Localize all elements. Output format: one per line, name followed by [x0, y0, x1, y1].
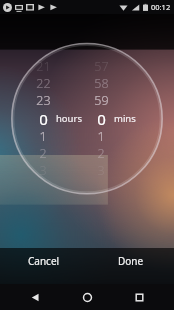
staticText: 3 — [97, 162, 105, 179]
staticText: 57 — [94, 58, 109, 75]
button[interactable]: Recent apps — [122, 284, 156, 310]
button[interactable]: Home — [70, 284, 104, 310]
staticText: 23 — [36, 92, 51, 109]
staticText: 2 — [97, 145, 105, 162]
button[interactable]: Cancel — [0, 244, 87, 278]
button[interactable]: Back — [18, 284, 52, 310]
button[interactable]: Done — [87, 244, 174, 278]
staticText: mins — [114, 112, 136, 125]
staticText: 1 — [39, 128, 47, 145]
staticText: 0 — [39, 109, 48, 128]
staticText: 21 — [36, 58, 51, 75]
staticText: 0 — [97, 109, 106, 128]
button[interactable]: 57 — [91, 58, 111, 179]
staticText: Cancel — [28, 254, 60, 268]
staticText: 22 — [36, 75, 51, 92]
staticText: hours — [56, 112, 82, 125]
staticText: 00:12 — [151, 2, 171, 12]
staticText: 1 — [97, 128, 105, 145]
button[interactable]: 21 — [33, 58, 53, 179]
staticText: Done — [118, 254, 144, 268]
staticText: 59 — [94, 92, 109, 109]
staticText: 3 — [39, 162, 47, 179]
staticText: 58 — [94, 75, 109, 92]
staticText: 2 — [39, 145, 47, 162]
